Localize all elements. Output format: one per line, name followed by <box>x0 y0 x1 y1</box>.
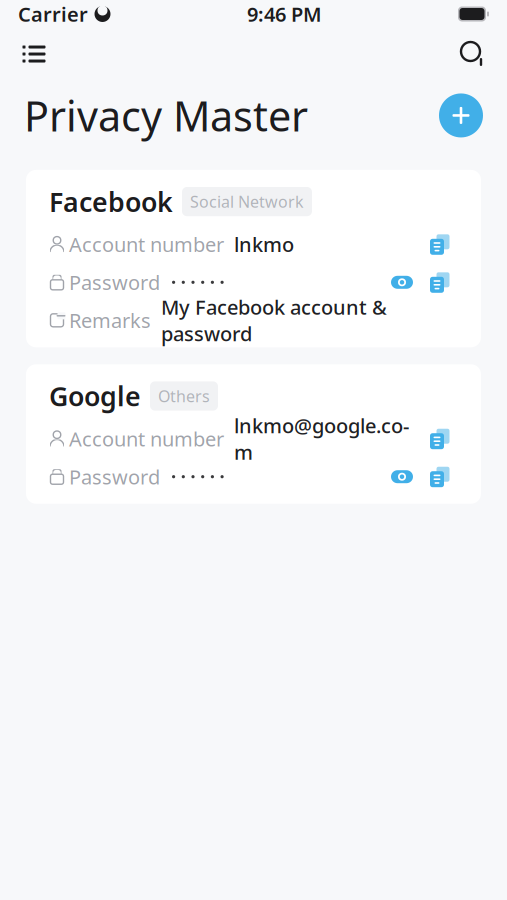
button[interactable]: Google <box>26 364 481 504</box>
button[interactable]: Copy Account number <box>422 229 458 259</box>
staticText: My Facebook account & password <box>161 294 387 347</box>
button[interactable]: Show password <box>382 267 422 297</box>
button[interactable]: Facebook <box>26 170 481 347</box>
staticText: lnkmo@google.com <box>234 412 409 465</box>
staticText: Carrier <box>18 1 88 27</box>
staticText: 9:46 PM <box>247 1 322 27</box>
button[interactable]: Add entry <box>439 93 483 137</box>
staticText: Remarks <box>69 307 151 334</box>
button[interactable]: Copy Password <box>422 462 458 492</box>
staticText: Password <box>69 463 160 490</box>
button[interactable]: Menu <box>12 34 56 74</box>
staticText: Account number <box>69 425 224 452</box>
staticText: Account number <box>69 231 224 258</box>
staticText: Password <box>69 269 160 296</box>
staticText: Others <box>158 385 210 407</box>
button[interactable]: Search <box>451 34 495 74</box>
staticText: Google <box>49 378 141 414</box>
staticText: Privacy Master <box>24 88 308 143</box>
staticText: Social Network <box>190 191 304 212</box>
staticText: lnkmo <box>234 231 294 258</box>
button[interactable]: Copy Account number <box>422 424 458 454</box>
button[interactable]: Show password <box>382 462 422 492</box>
button[interactable]: Copy Password <box>422 267 458 297</box>
staticText: Facebook <box>49 184 173 219</box>
